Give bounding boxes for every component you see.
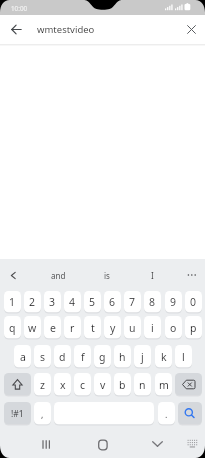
button[interactable]: n [134, 373, 151, 396]
button[interactable] [178, 402, 202, 425]
button[interactable]: 0 [185, 291, 202, 313]
staticText: 0 [190, 295, 197, 309]
staticText: x [60, 378, 66, 392]
button[interactable]: y [104, 316, 121, 339]
staticText: 8 [149, 295, 156, 309]
staticText: s [40, 350, 46, 364]
staticText: e [50, 321, 56, 335]
staticText: q [9, 321, 16, 335]
staticText: l [182, 350, 185, 364]
staticText: 2 [29, 295, 36, 309]
staticText: v [100, 378, 106, 392]
staticText: , [41, 408, 44, 420]
staticText: a [20, 350, 26, 364]
button[interactable]: I [138, 259, 166, 291]
button[interactable]: and [38, 259, 78, 291]
staticText: is [104, 270, 110, 281]
staticText: i [151, 321, 154, 335]
staticText: u [129, 321, 136, 335]
staticText: h [119, 350, 126, 364]
staticText: p [190, 321, 197, 335]
button[interactable] [175, 373, 202, 396]
button[interactable] [0, 259, 26, 291]
button[interactable]: 2 [24, 291, 41, 313]
button[interactable]: m [155, 373, 172, 396]
staticText: 5 [89, 295, 96, 309]
button[interactable]: p [185, 316, 202, 339]
staticText: r [70, 321, 75, 335]
staticText: 7 [129, 295, 136, 309]
button[interactable]: , [34, 402, 51, 425]
button[interactable]: e [44, 316, 61, 339]
staticText: 10:00 [11, 4, 28, 13]
button[interactable]: v [94, 373, 111, 396]
staticText: 9 [170, 295, 177, 309]
button[interactable] [182, 434, 202, 454]
staticText: y [110, 321, 116, 335]
button[interactable]: h [114, 345, 131, 368]
button[interactable]: r [64, 316, 81, 339]
button[interactable]: d [54, 345, 71, 368]
button[interactable]: 9 [165, 291, 182, 313]
staticText: and [51, 270, 66, 281]
button[interactable] [143, 431, 171, 458]
staticText: j [141, 350, 144, 364]
staticText: w [28, 321, 37, 335]
button[interactable]: a [14, 345, 31, 368]
button[interactable]: u [124, 316, 141, 339]
button[interactable]: i [144, 316, 161, 339]
button[interactable] [3, 15, 29, 44]
staticText: f [81, 350, 85, 364]
button[interactable]: t [84, 316, 101, 339]
button[interactable]: . [158, 402, 175, 425]
button[interactable]: !#1 [4, 402, 31, 425]
button[interactable]: 4 [64, 291, 81, 313]
staticText: g [99, 350, 106, 364]
staticText: 1 [9, 295, 16, 309]
staticText: wmtestvideo [37, 23, 95, 36]
button[interactable]: j [134, 345, 151, 368]
button[interactable]: l [175, 345, 192, 368]
staticText: !#1 [11, 408, 24, 420]
button[interactable]: 7 [124, 291, 141, 313]
staticText: c [80, 378, 86, 392]
staticText: I [151, 270, 154, 281]
button[interactable]: f [74, 345, 91, 368]
staticText: b [119, 378, 126, 392]
button[interactable] [4, 373, 31, 396]
staticText: d [59, 350, 66, 364]
button[interactable]: 1 [4, 291, 21, 313]
staticText: . [165, 408, 168, 420]
button[interactable]: k [155, 345, 172, 368]
staticText: 3 [49, 295, 56, 309]
button[interactable]: x [54, 373, 71, 396]
button[interactable]: w [24, 316, 41, 339]
button[interactable]: z [34, 373, 51, 396]
button[interactable] [179, 15, 204, 44]
button[interactable]: 6 [104, 291, 121, 313]
staticText: o [170, 321, 177, 335]
button[interactable] [54, 402, 154, 425]
button[interactable]: is [88, 259, 125, 291]
button[interactable]: b [114, 373, 131, 396]
button[interactable]: q [4, 316, 21, 339]
staticText: 4 [69, 295, 76, 309]
button[interactable]: 5 [84, 291, 101, 313]
button[interactable] [89, 431, 117, 458]
button[interactable]: 8 [144, 291, 161, 313]
staticText: t [91, 321, 95, 335]
button[interactable] [178, 259, 205, 291]
button[interactable]: o [165, 316, 182, 339]
button[interactable]: s [34, 345, 51, 368]
button[interactable]: 3 [44, 291, 61, 313]
staticText: k [161, 350, 167, 364]
staticText: 6 [109, 295, 116, 309]
button[interactable] [32, 431, 60, 458]
button[interactable]: g [94, 345, 111, 368]
staticText: n [139, 378, 146, 392]
staticText: m [159, 378, 169, 392]
button[interactable]: c [74, 373, 91, 396]
staticText: z [40, 378, 45, 392]
